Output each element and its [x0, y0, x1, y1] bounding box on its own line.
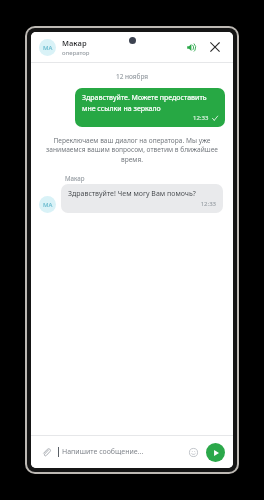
button[interactable]: Send: [206, 443, 225, 462]
staticText: МА: [43, 44, 53, 52]
staticText: 12:33: [193, 114, 209, 122]
staticText: Переключаем ваш диалог на оператора. Мы …: [43, 136, 221, 164]
staticText: Напишите сообщение...: [62, 447, 185, 457]
button[interactable]: Attach file: [39, 445, 53, 459]
button[interactable]: Close: [205, 37, 225, 57]
button[interactable]: Emoji: [185, 444, 201, 460]
button[interactable]: Здравствуйте! Чем могу Вам помочь?: [61, 184, 223, 213]
button[interactable]: Здравствуйте. Можете предоставить мне сс…: [75, 88, 225, 127]
button[interactable]: Sound: [181, 37, 201, 57]
staticText: Макар: [65, 174, 85, 182]
staticText: Здравствуйте! Чем могу Вам помочь?: [68, 189, 196, 199]
staticText: оператор: [62, 49, 90, 57]
staticText: МА: [43, 201, 53, 209]
staticText: Здравствуйте. Можете предоставить мне сс…: [82, 93, 218, 113]
staticText: 12 ноября: [31, 72, 233, 81]
staticText: 12:33: [68, 200, 216, 208]
staticText: Макар: [62, 38, 87, 48]
